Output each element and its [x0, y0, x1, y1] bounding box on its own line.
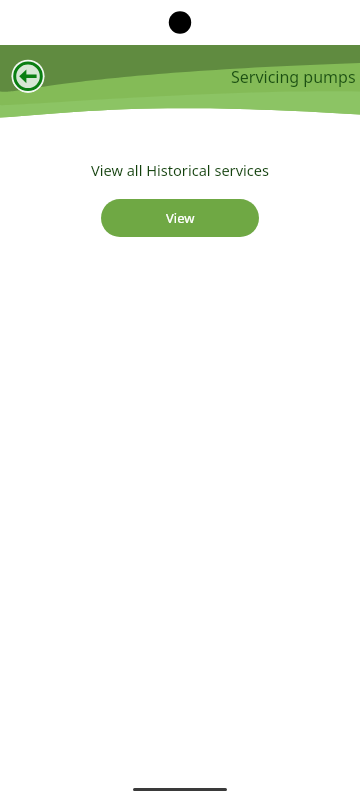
staticText: Servicing pumps [231, 66, 356, 88]
button[interactable]: Back [11, 59, 45, 93]
staticText: View [166, 209, 195, 227]
staticText: View all Historical services [0, 160, 360, 180]
button[interactable]: View [101, 199, 259, 237]
